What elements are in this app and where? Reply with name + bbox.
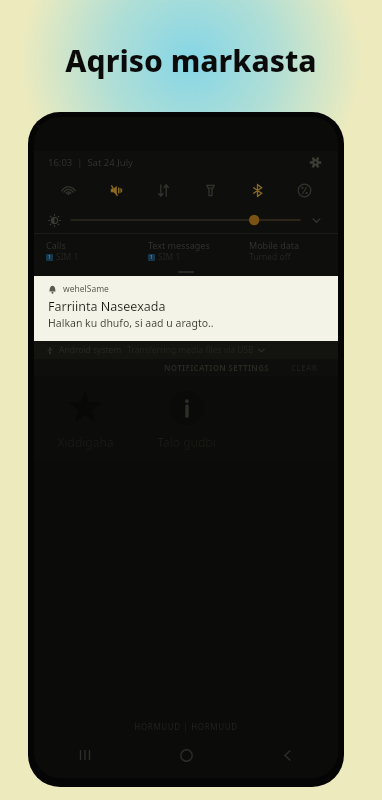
button[interactable]: Flashlight [187,175,234,205]
staticText: 1 [150,254,153,261]
button[interactable]: Auto rotate [281,175,328,205]
button[interactable]: Sound [92,175,140,205]
staticText: Transferring media files via USB [127,344,254,356]
staticText: Android system [59,344,122,356]
button[interactable]: NOTIFICATION SETTINGS [160,362,273,373]
button[interactable]: Mobile data [237,239,338,263]
staticText: 16:03 | Sat 24 July [48,156,133,169]
button[interactable]: Recents [34,742,136,768]
button[interactable]: CLEAR [287,362,322,373]
staticText: SIM 1 [56,251,79,263]
button[interactable]: wehelSame [34,276,338,341]
staticText: 1 [48,254,51,261]
staticText: Text messages [148,239,210,251]
staticText: CLEAR [291,362,318,373]
button[interactable]: Text messages [136,239,237,263]
button[interactable]: Mobile data [140,175,187,205]
button[interactable]: Home [136,742,237,768]
button[interactable]: Wi-Fi [44,175,92,205]
staticText: SIM 1 [158,251,181,263]
staticText: Aqriso markasta [0,40,382,81]
staticText: wehelSame [63,283,109,295]
staticText: Turned off [249,251,291,263]
button[interactable]: Android system [34,341,338,359]
staticText: HORMUUD | HORMUUD [34,721,338,732]
staticText: Talo gudbi [157,434,216,450]
button[interactable]: Expand [308,212,324,228]
staticText: Halkan ku dhufo, si aad u aragto.. [48,316,214,330]
button[interactable]: Bluetooth [234,175,281,205]
button[interactable]: Settings [306,153,324,171]
staticText: Xiddigaha [57,434,114,450]
button[interactable]: Talo gudbi [136,376,237,450]
staticText: Calls [46,239,66,251]
staticText: NOTIFICATION SETTINGS [164,362,269,373]
button[interactable]: Calls [34,239,136,263]
staticText: Farriinta Naseexada [48,298,166,315]
staticText: Mobile data [249,239,300,251]
button[interactable] [71,213,300,227]
